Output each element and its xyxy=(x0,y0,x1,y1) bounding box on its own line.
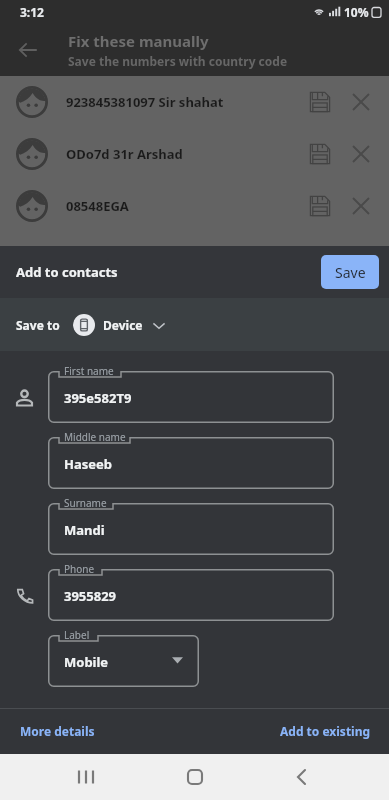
button[interactable]: Back xyxy=(6,28,50,72)
staticText: 923845381097 Sir shahat xyxy=(66,93,224,111)
staticText: 3:12 xyxy=(20,4,44,20)
staticText: Middle name xyxy=(64,430,126,444)
staticText: Fix these manually xyxy=(68,31,209,51)
staticText: Label xyxy=(64,628,90,642)
staticText: 08548EGA xyxy=(66,197,129,215)
staticText: 395e582T9 xyxy=(64,389,132,407)
button[interactable]: Dismiss xyxy=(339,80,383,124)
staticText: Phone xyxy=(64,562,95,576)
button[interactable]: Save contact xyxy=(297,81,339,123)
staticText: First name xyxy=(64,364,114,378)
staticText: ODo7d 31r Arshad xyxy=(66,145,183,163)
button[interactable]: Middle name xyxy=(48,430,334,489)
button[interactable]: Recent apps xyxy=(63,754,109,800)
button[interactable]: Home xyxy=(172,754,218,800)
button[interactable]: More details xyxy=(20,723,95,739)
staticText: Surname xyxy=(64,496,107,510)
button[interactable]: Add to existing xyxy=(280,723,371,739)
staticText: Mandi xyxy=(64,521,105,539)
button[interactable]: Save contact xyxy=(297,133,339,175)
button[interactable]: 923845381097 Sir shahat xyxy=(0,76,389,128)
staticText: 3955829 xyxy=(64,587,117,605)
staticText: Add to contacts xyxy=(16,263,118,281)
staticText: Mobile xyxy=(64,653,109,671)
button[interactable]: Back xyxy=(280,754,326,800)
staticText: Save xyxy=(335,263,366,282)
button[interactable]: Device xyxy=(73,312,167,338)
staticText: Haseeb xyxy=(64,455,112,473)
button[interactable]: Surname xyxy=(48,496,334,555)
button[interactable]: Dismiss xyxy=(339,184,383,228)
staticText: Device xyxy=(103,317,143,333)
button[interactable]: ODo7d 31r Arshad xyxy=(0,128,389,180)
button[interactable]: Save contact xyxy=(297,185,339,227)
button[interactable]: 08548EGA xyxy=(0,180,389,232)
button[interactable]: First name xyxy=(48,364,334,423)
staticText: 10% xyxy=(344,4,369,20)
button[interactable]: Phone xyxy=(48,562,334,621)
button[interactable]: Label xyxy=(48,628,199,687)
staticText: Save to xyxy=(16,317,60,333)
staticText: Save the numbers with country code xyxy=(68,53,288,69)
button[interactable]: Save xyxy=(321,255,379,289)
button[interactable]: Dismiss xyxy=(339,132,383,176)
